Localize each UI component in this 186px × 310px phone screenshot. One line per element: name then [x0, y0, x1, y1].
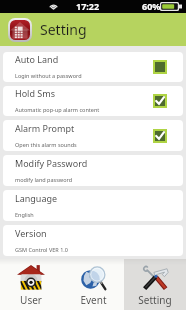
button[interactable]: Modify Password [3, 155, 183, 186]
button[interactable]: Event [62, 259, 124, 310]
staticText: modify land password [15, 176, 73, 183]
staticText: Hold Sms [15, 87, 55, 99]
button[interactable]: Alarm Prompt [3, 120, 183, 151]
staticText: Language [15, 192, 58, 204]
staticText: Event [80, 293, 107, 307]
staticText: Modify Password [15, 157, 88, 169]
button[interactable]: Language [3, 190, 183, 221]
staticText: Open this alarm sounds [15, 141, 77, 148]
button[interactable]: Auto Land [3, 52, 183, 82]
button[interactable]: Version [3, 225, 183, 256]
staticText: 60% [142, 0, 161, 12]
staticText: User [20, 293, 42, 307]
button[interactable]: User [0, 259, 62, 310]
staticText: Setting [40, 20, 87, 39]
staticText: GSM Control VER 1.0 [15, 246, 68, 253]
staticText: English [15, 211, 34, 218]
button[interactable]: Setting [8, 13, 87, 46]
button[interactable]: Hold Sms [3, 86, 183, 116]
staticText: Automatic pop-up alarm content [15, 106, 100, 113]
staticText: Login without a password [15, 72, 82, 79]
staticText: Setting [138, 293, 172, 307]
staticText: 17:22 [76, 0, 100, 12]
button[interactable]: Setting [124, 259, 186, 310]
staticText: Alarm Prompt [15, 122, 75, 134]
staticText: Auto Land [15, 53, 59, 65]
staticText: Version [15, 227, 47, 239]
